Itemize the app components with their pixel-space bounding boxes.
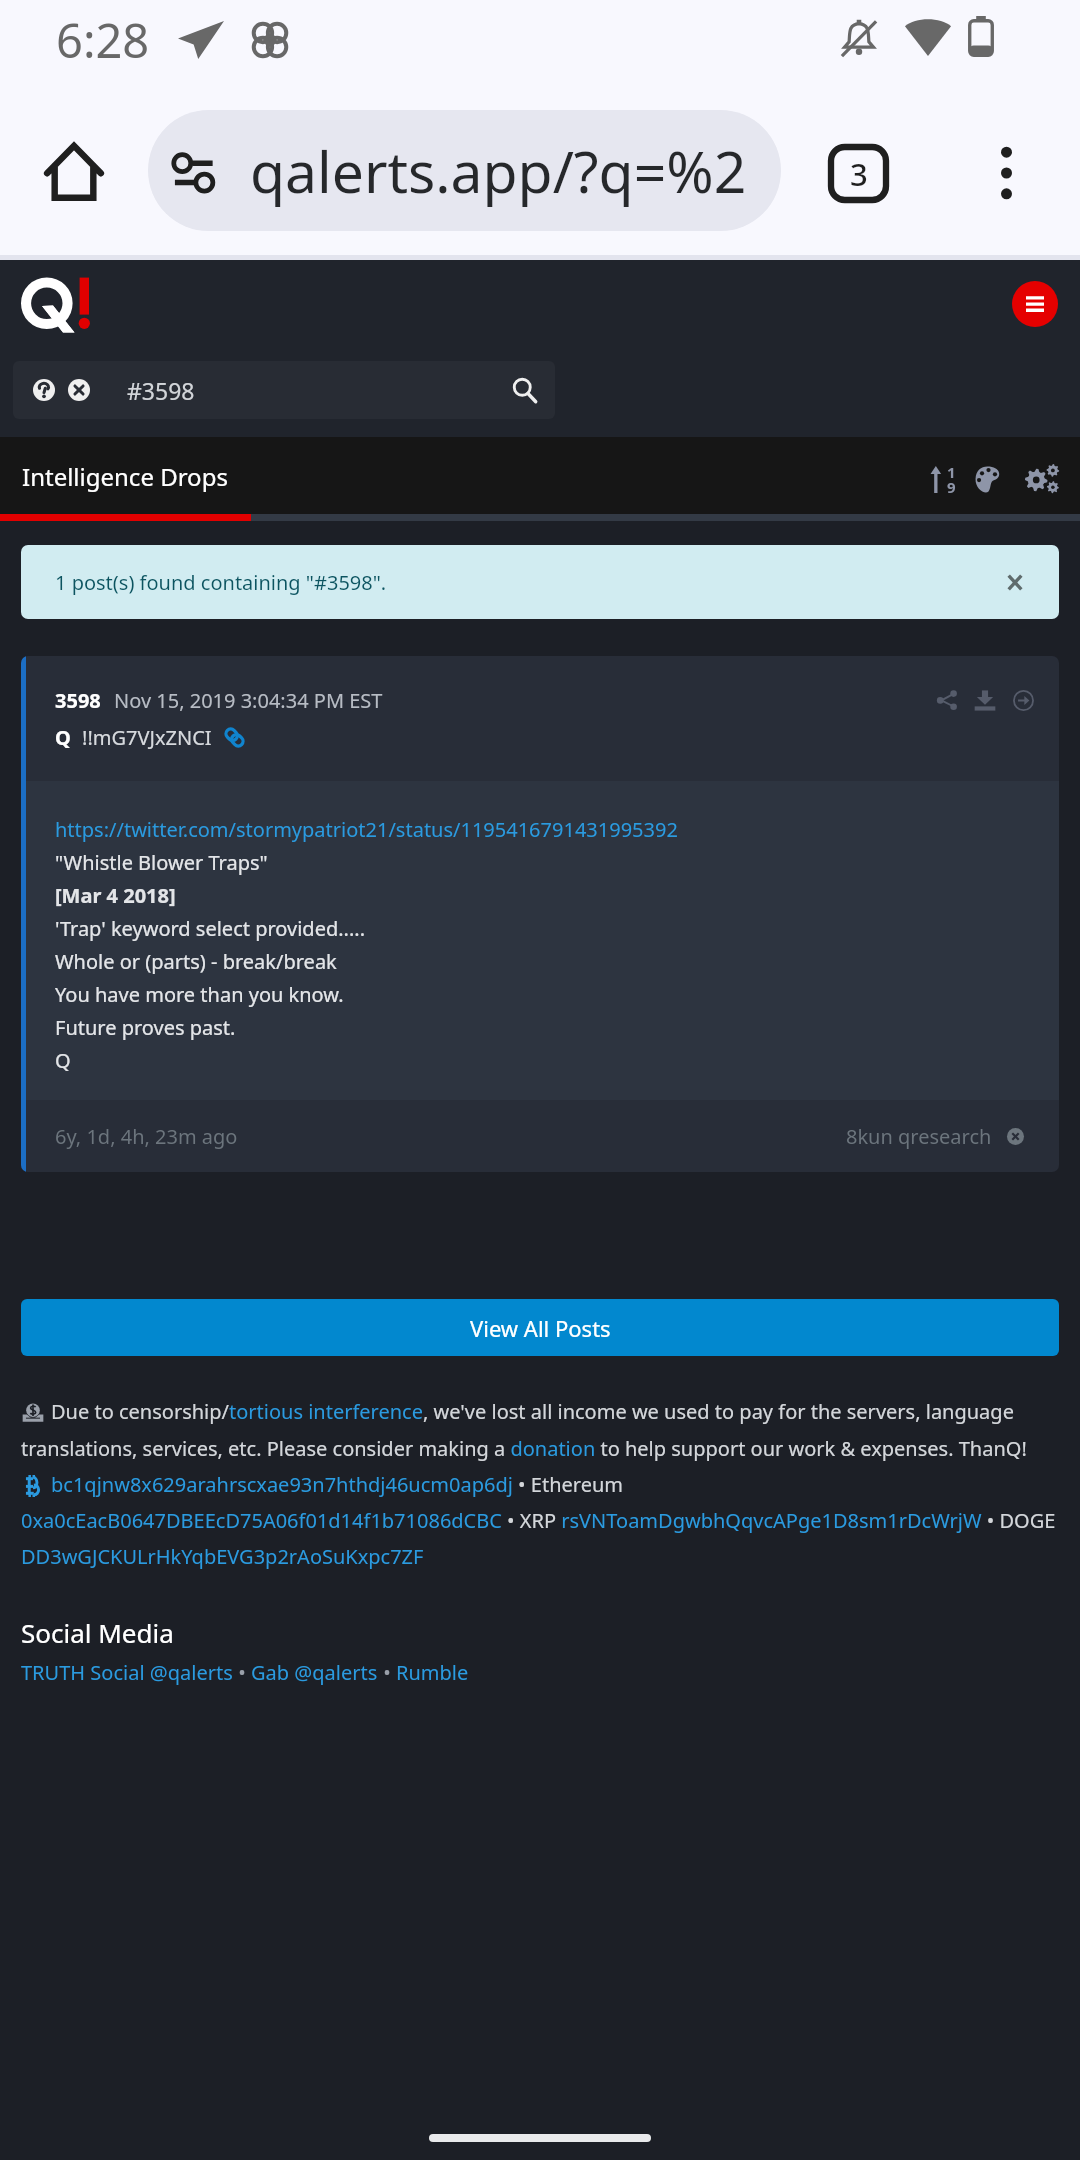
button[interactable]: Share xyxy=(928,681,966,719)
button[interactable]: Rumble xyxy=(396,1659,469,1686)
staticText: 3 xyxy=(850,153,868,195)
button[interactable]: More options xyxy=(960,127,1052,219)
button[interactable]: Search xyxy=(509,375,539,405)
button[interactable]: Menu xyxy=(1012,281,1058,327)
button[interactable]: Copy link xyxy=(224,727,245,748)
button[interactable]: Help xyxy=(29,375,59,405)
button[interactable]: Clear search xyxy=(64,375,94,405)
button[interactable]: Dismiss xyxy=(993,560,1037,604)
button[interactable]: TRUTH Social @qalerts xyxy=(21,1659,233,1686)
staticText: Q xyxy=(55,724,71,751)
staticText: Due to censorship/tortious interference,… xyxy=(21,1398,1059,1570)
staticText: qalerts.app/?q=%2 xyxy=(250,132,747,210)
staticText: 6:28 xyxy=(56,8,150,72)
button[interactable]: Gab @qalerts xyxy=(251,1659,378,1686)
staticText: 6y, 1d, 4h, 23m ago xyxy=(55,1123,238,1150)
staticText: 3598 xyxy=(55,687,101,714)
staticText: Nov 15, 2019 3:04:34 PM EST xyxy=(114,687,383,714)
staticText: Rumble xyxy=(396,1659,469,1686)
button[interactable]: Home xyxy=(26,123,122,219)
staticText: Social Media xyxy=(21,1615,174,1650)
staticText: • xyxy=(233,1659,251,1686)
button[interactable]: Sort order xyxy=(917,454,967,504)
staticText: View All Posts xyxy=(470,1313,611,1343)
button[interactable]: Theme xyxy=(962,453,1014,505)
button[interactable]: Open post xyxy=(1004,681,1042,719)
button[interactable]: Remove source xyxy=(1007,1128,1024,1145)
staticText: https://twitter.com/stormypatriot21/stat… xyxy=(55,816,678,1074)
button[interactable]: Download xyxy=(966,681,1004,719)
staticText: 8kun qresearch xyxy=(846,1123,992,1150)
button[interactable]: Tabs xyxy=(812,127,904,219)
button[interactable]: QAlerts home xyxy=(21,276,90,333)
staticText: #3598 xyxy=(127,375,195,406)
button[interactable]: Help xyxy=(13,361,555,419)
staticText: TRUTH Social @qalerts xyxy=(21,1659,233,1686)
staticText: 1 post(s) found containing "#3598". xyxy=(55,569,387,596)
staticText: Intelligence Drops xyxy=(22,460,228,493)
button[interactable]: View All Posts xyxy=(21,1299,1059,1356)
staticText: Gab @qalerts xyxy=(251,1659,378,1686)
button[interactable]: qalerts.app/?q=%2 xyxy=(148,110,781,231)
staticText: • xyxy=(378,1659,396,1686)
staticText: 1 9 xyxy=(947,462,956,497)
staticText: !!mG7VJxZNCI xyxy=(82,724,212,751)
button[interactable]: Settings xyxy=(1016,452,1068,504)
